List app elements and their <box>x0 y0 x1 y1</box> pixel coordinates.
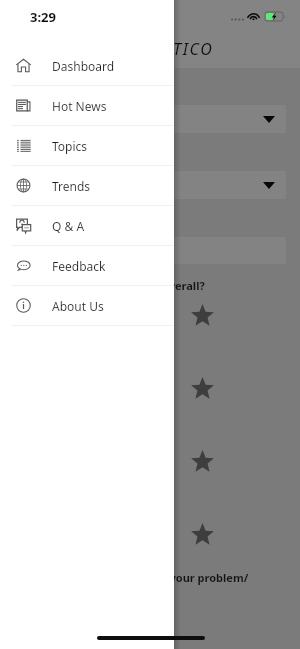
staticText: Please describe your problem/ <box>82 570 249 585</box>
button[interactable]: Rate 4 <box>190 522 215 547</box>
button[interactable]: Hot News <box>0 86 174 126</box>
button[interactable]: About Us <box>0 286 174 326</box>
button[interactable]: Q & A <box>0 206 174 246</box>
staticText: About Us <box>52 298 104 314</box>
staticText: Topics <box>52 138 88 154</box>
button[interactable]: Expand <box>14 171 286 199</box>
button[interactable] <box>14 237 286 264</box>
staticText: Feedback <box>52 258 106 274</box>
staticText: How was your experience overall? <box>19 278 205 293</box>
other: Expand <box>263 182 275 189</box>
button[interactable]: Rate 3 <box>190 449 215 474</box>
staticText: ESTATICO <box>135 38 214 60</box>
button[interactable]: Expand <box>14 105 286 133</box>
other: Expand <box>263 116 275 123</box>
button[interactable]: Trends <box>0 166 174 206</box>
button[interactable]: Feedback <box>0 246 174 286</box>
staticText: 3:29 <box>30 8 56 26</box>
button[interactable]: Dashboard <box>0 46 174 86</box>
button[interactable]: Rate 1 <box>190 303 215 328</box>
staticText: Hot News <box>52 98 107 114</box>
button[interactable]: Rate 2 <box>190 376 215 401</box>
staticText: Q & A <box>52 218 85 234</box>
button[interactable]: Topics <box>0 126 174 166</box>
staticText: Dashboard <box>52 58 115 74</box>
staticText: Trends <box>52 178 91 194</box>
